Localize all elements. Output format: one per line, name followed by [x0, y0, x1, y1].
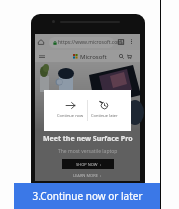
staticText: Continue now: [57, 113, 84, 118]
button[interactable]: 3.Continue now or later: [14, 183, 160, 209]
button[interactable]: Continue later: [90, 100, 118, 118]
staticText: Meet the new Surface Pro: [43, 134, 133, 144]
staticText: The most versatile laptop: [58, 148, 118, 155]
staticText: SHOP NOW ›: [76, 162, 101, 167]
staticText: https://www.microsoft.com/: [58, 39, 124, 46]
button[interactable]: SHOP NOW ›: [62, 159, 114, 169]
button[interactable]: Continue now: [57, 100, 84, 118]
staticText: 3.Continue now or later: [32, 189, 143, 203]
button[interactable]: LEARN MORE ›: [73, 173, 102, 178]
staticText: Microsoft: [80, 53, 107, 61]
staticText: Continue later: [91, 113, 118, 118]
staticText: LEARN MORE ›: [73, 173, 102, 178]
